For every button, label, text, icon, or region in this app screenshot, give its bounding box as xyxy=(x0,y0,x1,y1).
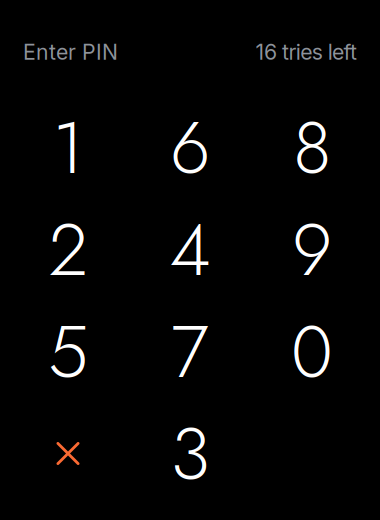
button[interactable]: 2 xyxy=(7,199,129,301)
button[interactable]: 8 xyxy=(251,97,373,199)
staticText: 3 xyxy=(170,402,209,506)
button[interactable]: 4 xyxy=(129,199,251,301)
staticText: 6 xyxy=(170,96,210,200)
button[interactable]: 3 xyxy=(129,403,251,505)
staticText: 16 tries left xyxy=(256,39,357,65)
button[interactable]: 1 xyxy=(7,97,129,199)
button[interactable]: Delete xyxy=(7,403,129,505)
button[interactable]: 7 xyxy=(129,301,251,403)
staticText: 8 xyxy=(293,96,331,200)
staticText: 9 xyxy=(292,198,332,302)
staticText: Enter PIN xyxy=(23,39,118,65)
button[interactable]: 6 xyxy=(129,97,251,199)
staticText: 4 xyxy=(169,198,210,302)
staticText: 7 xyxy=(171,300,209,404)
staticText: 1 xyxy=(52,96,83,200)
staticText: 2 xyxy=(48,198,87,302)
button[interactable]: 0 xyxy=(251,301,373,403)
button[interactable]: 9 xyxy=(251,199,373,301)
staticText: 5 xyxy=(48,300,88,404)
button[interactable]: 5 xyxy=(7,301,129,403)
staticText: 0 xyxy=(291,300,333,404)
